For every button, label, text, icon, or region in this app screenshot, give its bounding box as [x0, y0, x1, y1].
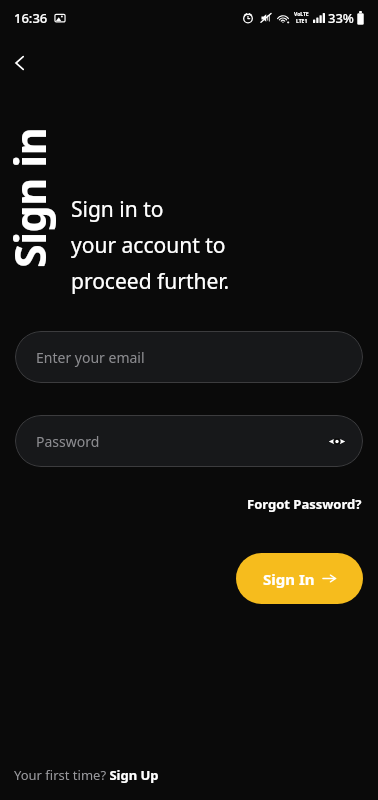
button[interactable]: Password [15, 415, 363, 467]
staticText: Sign in to [71, 195, 164, 224]
staticText: LTE1 [296, 18, 308, 25]
staticText: VoLTE [294, 11, 309, 18]
staticText: Sign In [263, 569, 315, 589]
staticText: Password [36, 432, 100, 451]
staticText: proceed further. [71, 267, 230, 296]
staticText: Forgot Password? [247, 495, 362, 513]
button[interactable]: Back [6, 49, 34, 77]
staticText: your account to [71, 231, 226, 260]
staticText: 16:36 [14, 9, 48, 27]
button[interactable]: Enter your email [15, 331, 363, 383]
button[interactable]: Your first time? Sign Up [12, 762, 161, 788]
staticText: Sign in [0, 127, 56, 268]
staticText: Your first time? Sign Up [14, 766, 159, 784]
staticText: Enter your email [36, 348, 145, 367]
button[interactable]: Forgot Password? [245, 491, 364, 517]
button[interactable]: Show password [322, 426, 352, 456]
button[interactable]: Sign In [236, 553, 363, 604]
staticText: 33% [328, 9, 354, 27]
